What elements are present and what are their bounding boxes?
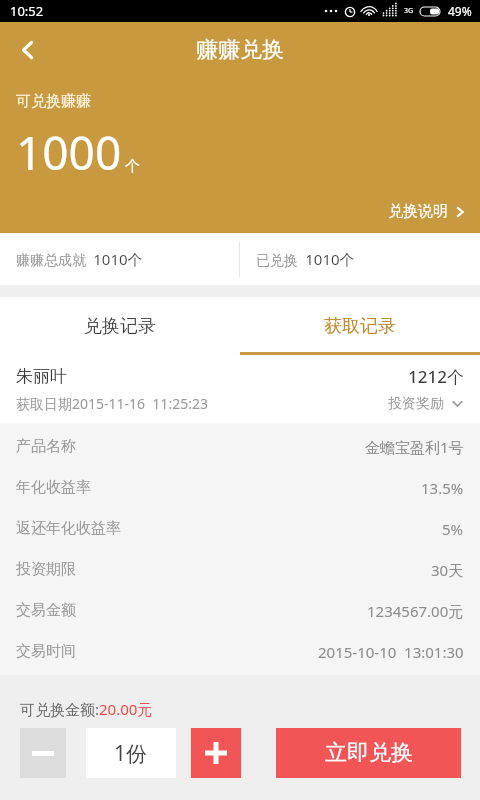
staticText: 49% xyxy=(448,3,472,19)
staticText: 兑换记录 xyxy=(84,315,156,338)
staticText: 赚赚总成就 1010个 xyxy=(16,249,143,269)
button[interactable]: Decrease xyxy=(20,728,66,778)
staticText: 2015-10-10 13:01:30 xyxy=(318,642,464,662)
staticText: 3G xyxy=(404,6,414,16)
button[interactable]: 立即兑换 xyxy=(276,728,461,778)
staticText: 已兑换 1010个 xyxy=(256,249,355,269)
staticText: 年化收益率 xyxy=(16,478,91,497)
staticText: 可兑换赚赚 xyxy=(16,92,91,111)
staticText: 个 xyxy=(125,157,140,176)
staticText: 赚赚兑换 xyxy=(196,36,284,64)
staticText: 交易金额 xyxy=(16,601,76,620)
staticText: 投资期限 xyxy=(16,560,76,579)
button[interactable]: 1份 xyxy=(86,728,176,778)
staticText: 30天 xyxy=(431,560,464,580)
staticText: 金蟾宝盈利1号 xyxy=(365,437,464,457)
button[interactable]: Increase xyxy=(191,728,241,778)
staticText: 朱丽叶 xyxy=(16,366,67,387)
staticText: 可兑换金额:20.00元 xyxy=(20,699,153,719)
staticText: 获取记录 xyxy=(324,315,396,338)
button[interactable]: Back xyxy=(0,22,56,78)
staticText: 立即兑换 xyxy=(325,739,413,767)
button[interactable]: 获取记录 xyxy=(240,297,480,355)
staticText: 产品名称 xyxy=(16,437,76,456)
button[interactable]: 朱丽叶 xyxy=(0,355,480,423)
staticText: 交易时间 xyxy=(16,642,76,661)
staticText: 1份 xyxy=(114,739,148,768)
staticText: 投资奖励 xyxy=(388,395,444,413)
button[interactable]: 已兑换 1010个 xyxy=(240,233,480,285)
staticText: 1212个 xyxy=(408,365,464,388)
staticText: 5% xyxy=(442,519,464,539)
staticText: 1234567.00元 xyxy=(367,601,464,621)
button[interactable]: 兑换说明 xyxy=(388,202,480,233)
staticText: 返还年化收益率 xyxy=(16,519,121,538)
button[interactable]: 兑换记录 xyxy=(0,297,240,355)
button[interactable]: 赚赚总成就 1010个 xyxy=(0,233,239,285)
staticText: 获取日期2015-11-16 11:25:23 xyxy=(16,394,208,413)
staticText: 13.5% xyxy=(421,478,464,498)
staticText: 兑换说明 xyxy=(388,202,448,221)
staticText: 1000 xyxy=(16,121,122,184)
staticText: 10:52 xyxy=(10,2,44,20)
